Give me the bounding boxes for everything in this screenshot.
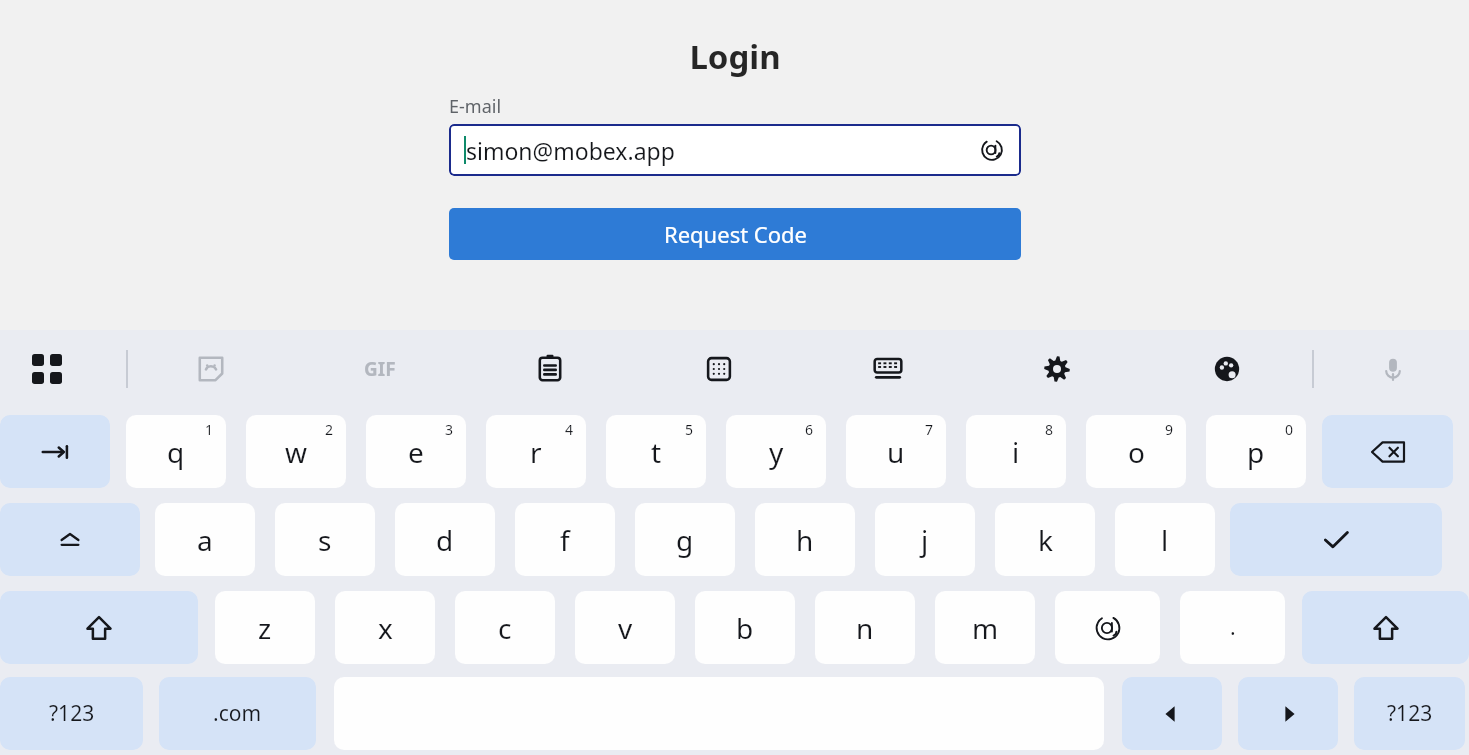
staticText: simon@mobex.app (466, 135, 675, 166)
staticText: n (856, 609, 874, 647)
button[interactable]: k (995, 503, 1095, 576)
button[interactable]: Shift (0, 591, 198, 664)
staticText: 9 (1165, 420, 1174, 439)
button[interactable]: r (486, 415, 586, 488)
staticText: 1 (205, 420, 214, 439)
staticText: k (1038, 521, 1053, 559)
staticText: l (1161, 521, 1169, 559)
button[interactable]: One-handed mode (862, 343, 914, 395)
button[interactable]: Settings (1031, 343, 1083, 395)
button[interactable]: t (606, 415, 706, 488)
button[interactable]: g (635, 503, 735, 576)
staticText: 7 (925, 420, 934, 439)
staticText: E-mail (449, 94, 502, 119)
staticText: j (921, 521, 929, 559)
button[interactable]: p (1206, 415, 1306, 488)
button[interactable]: Caps lock (0, 503, 140, 576)
staticText: GIF (364, 356, 396, 382)
button[interactable]: j (875, 503, 975, 576)
button[interactable]: Voice input (1367, 343, 1419, 395)
button[interactable]: o (1086, 415, 1186, 488)
staticText: 4 (565, 420, 574, 439)
button[interactable]: Shift (1302, 591, 1469, 664)
staticText: o (1128, 433, 1145, 471)
button[interactable]: y (726, 415, 826, 488)
button[interactable]: a (155, 503, 255, 576)
button[interactable]: d (395, 503, 495, 576)
button[interactable]: simon@mobex.app (449, 124, 1021, 176)
staticText: w (285, 433, 308, 471)
button[interactable]: ?123 (1354, 677, 1465, 750)
staticText: z (258, 609, 272, 647)
button[interactable]: z (215, 591, 315, 664)
button[interactable]: Tab (0, 415, 110, 488)
staticText: 2 (325, 420, 334, 439)
staticText: 8 (1045, 420, 1054, 439)
button[interactable]: f (515, 503, 615, 576)
button[interactable]: l (1115, 503, 1215, 576)
button[interactable]: Clipboard (524, 343, 576, 395)
button[interactable]: s (275, 503, 375, 576)
staticText: m (972, 609, 999, 647)
button[interactable]: e (366, 415, 466, 488)
staticText: 6 (805, 420, 814, 439)
button[interactable]: x (335, 591, 435, 664)
staticText: x (378, 609, 393, 647)
staticText: g (676, 521, 694, 559)
staticText: u (887, 433, 905, 471)
staticText: f (560, 521, 570, 559)
staticText: Request Code (664, 219, 807, 249)
button[interactable]: ?123 (0, 677, 143, 750)
button[interactable]: Themes (1201, 343, 1253, 395)
staticText: h (796, 521, 814, 559)
button[interactable]: m (935, 591, 1035, 664)
button[interactable]: Open features menu (28, 350, 66, 388)
staticText: ?123 (1387, 699, 1433, 728)
button[interactable]: w (246, 415, 346, 488)
staticText: v (618, 609, 633, 647)
button[interactable]: GIF (350, 345, 410, 393)
button[interactable]: At sign (1055, 591, 1160, 664)
button[interactable]: .com (159, 677, 316, 750)
staticText: 3 (445, 420, 454, 439)
staticText: e (408, 433, 424, 471)
staticText: 5 (685, 420, 694, 439)
staticText: t (651, 433, 662, 471)
button[interactable]: . (1180, 591, 1285, 664)
button[interactable]: i (966, 415, 1066, 488)
staticText: i (1012, 433, 1020, 471)
staticText: c (498, 609, 512, 647)
staticText: q (167, 433, 185, 471)
staticText: d (436, 521, 454, 559)
staticText: s (318, 521, 332, 559)
button[interactable]: Enter (1230, 503, 1442, 576)
button[interactable]: Move cursor right (1238, 677, 1338, 750)
staticText: ?123 (49, 699, 95, 728)
staticText: a (197, 521, 213, 559)
button[interactable]: Backspace (1322, 415, 1453, 488)
staticText: . (1230, 613, 1236, 642)
button[interactable]: Move cursor left (1122, 677, 1222, 750)
button[interactable]: v (575, 591, 675, 664)
button[interactable]: Emoji keyboard (693, 343, 745, 395)
button[interactable]: c (455, 591, 555, 664)
staticText: Login (689, 34, 781, 79)
staticText: p (1247, 433, 1265, 471)
staticText: 0 (1285, 420, 1294, 439)
button[interactable]: Request Code (449, 208, 1021, 260)
button[interactable]: q (126, 415, 226, 488)
staticText: .com (213, 699, 262, 728)
button[interactable]: b (695, 591, 795, 664)
button[interactable]: u (846, 415, 946, 488)
button[interactable]: Stickers (185, 343, 237, 395)
staticText: b (736, 609, 754, 647)
staticText: y (769, 433, 784, 471)
button[interactable]: h (755, 503, 855, 576)
staticText: r (530, 433, 542, 471)
button[interactable]: n (815, 591, 915, 664)
